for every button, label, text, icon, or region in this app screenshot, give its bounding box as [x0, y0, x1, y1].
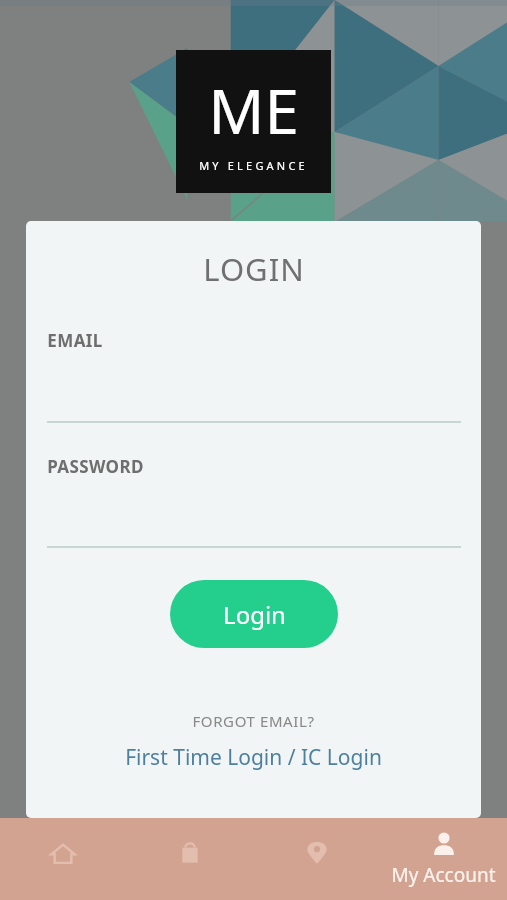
button[interactable]: Home — [0, 818, 126, 900]
staticText: First Time Login / IC Login — [125, 743, 382, 772]
button[interactable]: Shop — [126, 818, 253, 900]
staticText: ME — [208, 68, 299, 152]
staticText: FORGOT EMAIL? — [192, 711, 315, 731]
button[interactable]: My Account — [380, 818, 507, 900]
staticText: EMAIL — [47, 329, 103, 352]
button[interactable]: Stores — [253, 818, 380, 900]
button[interactable]: First Time Login / IC Login — [117, 740, 390, 775]
staticText: My Account — [391, 862, 496, 888]
staticText: MY ELEGANCE — [199, 158, 308, 173]
staticText: Login — [223, 598, 286, 631]
staticText: PASSWORD — [47, 455, 144, 478]
button[interactable]: FORGOT EMAIL? — [184, 708, 323, 734]
staticText: LOGIN — [203, 248, 305, 290]
button[interactable]: Login — [170, 580, 338, 648]
